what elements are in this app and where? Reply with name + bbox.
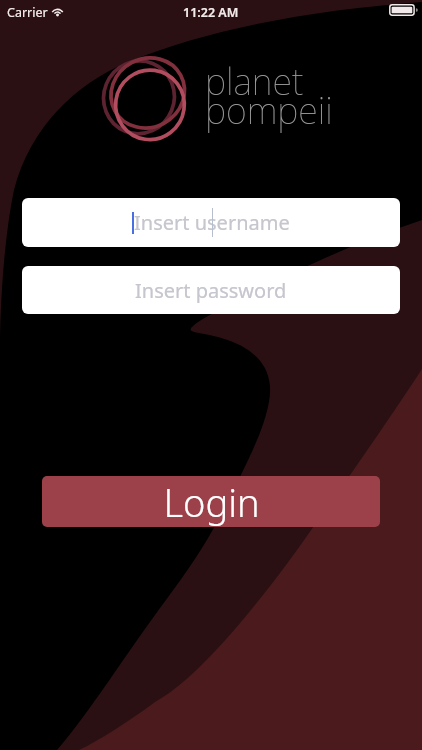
staticText: Login xyxy=(163,476,260,527)
staticText: planet xyxy=(205,57,304,106)
button[interactable]: Insert username xyxy=(22,198,400,247)
button[interactable]: Login xyxy=(42,476,380,527)
staticText: 11:22 AM xyxy=(183,4,239,21)
button[interactable]: Insert password xyxy=(22,266,400,314)
other: Wi-Fi signal xyxy=(51,6,64,16)
staticText: Insert password xyxy=(135,277,287,304)
staticText: Insert username xyxy=(134,209,290,236)
staticText: Carrier xyxy=(7,4,48,21)
staticText: pompeii xyxy=(205,86,333,135)
other: Battery full xyxy=(389,4,416,16)
